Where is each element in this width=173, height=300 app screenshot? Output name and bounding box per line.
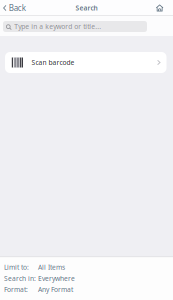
- staticText: Search in:: [4, 274, 36, 283]
- staticText: Back: [9, 3, 26, 13]
- button[interactable]: Limit to:: [4, 265, 173, 270]
- button[interactable]: Search in:: [4, 276, 173, 281]
- staticText: Any Format: [38, 285, 73, 294]
- button[interactable]: Back: [0, 0, 31, 16]
- button[interactable]: Format:: [4, 287, 173, 292]
- button[interactable]: Home: [150, 0, 173, 16]
- staticText: Scan barcode: [31, 58, 74, 67]
- staticText: Format:: [4, 285, 28, 294]
- staticText: Limit to:: [4, 263, 29, 272]
- button[interactable]: Type in a keyword or title...: [3, 21, 147, 32]
- button[interactable]: Scan barcode: [5, 52, 166, 73]
- staticText: Everywhere: [38, 274, 75, 283]
- staticText: Type in a keyword or title...: [14, 22, 101, 31]
- staticText: Search: [75, 4, 97, 12]
- staticText: All Items: [38, 263, 65, 272]
